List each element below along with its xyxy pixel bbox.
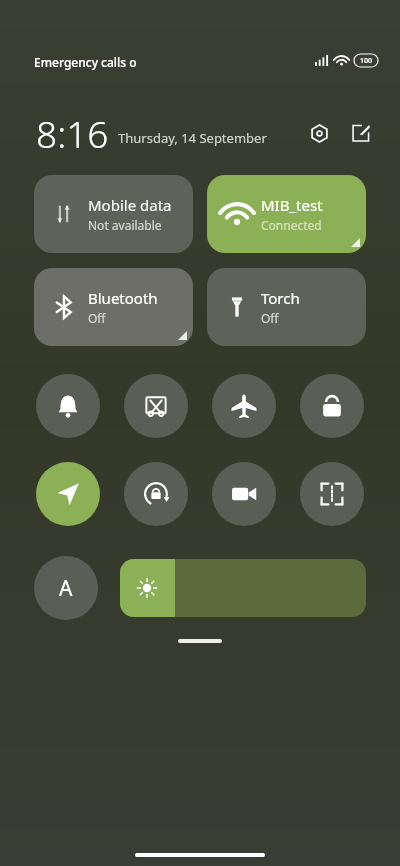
staticText: Connected <box>261 217 322 233</box>
button[interactable]: Notifications <box>36 374 100 438</box>
button[interactable]: A <box>34 556 98 620</box>
staticText: Mobile data <box>88 195 172 215</box>
button[interactable]: Screen recorder <box>212 462 276 526</box>
button[interactable]: Brightness <box>120 559 366 617</box>
button[interactable]: Screenshot <box>124 374 188 438</box>
staticText: Not available <box>88 217 162 233</box>
staticText: 100 <box>360 56 373 66</box>
button[interactable]: Settings <box>302 116 336 150</box>
button[interactable]: Mobile data <box>34 175 193 253</box>
staticText: Thursday, 14 September <box>118 129 267 147</box>
staticText: 8:16 <box>36 108 109 158</box>
button[interactable]: Bluetooth <box>34 268 193 346</box>
button[interactable]: Airplane mode <box>212 374 276 438</box>
staticText: Off <box>261 310 279 326</box>
staticText: Emergency calls o <box>34 54 137 70</box>
button[interactable]: Lock <box>300 374 364 438</box>
button[interactable]: MIB_test <box>207 175 366 253</box>
staticText: MIB_test <box>261 195 323 215</box>
button[interactable]: Torch <box>207 268 366 346</box>
button[interactable]: Expand <box>178 639 222 643</box>
staticText: A <box>59 574 73 603</box>
staticText: Torch <box>261 288 300 308</box>
button[interactable]: Edit <box>344 116 378 150</box>
staticText: Off <box>88 310 106 326</box>
button[interactable]: Auto rotate <box>124 462 188 526</box>
button[interactable]: Scan <box>300 462 364 526</box>
button[interactable]: Location <box>36 462 100 526</box>
staticText: Bluetooth <box>88 288 158 308</box>
